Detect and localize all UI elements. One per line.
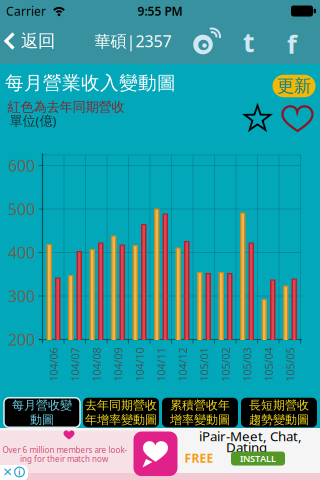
staticText: ing for their match now [20,454,108,464]
staticText: 增率變動圖 [170,412,230,427]
staticText: ✕ [2,465,12,479]
staticText: 累積營收年 [170,398,230,412]
staticText: t [243,24,255,60]
staticText: 每月營收變 [12,398,72,412]
staticText: 長短期營收 [249,398,309,412]
staticText: 104/11 [144,357,178,372]
staticText: 105/03 [230,357,264,372]
staticText: 去年同期營收 [85,398,157,412]
staticText: 104/12 [166,357,200,372]
staticText: 年增率變動圖 [85,412,157,427]
staticText: 600 [8,155,35,176]
staticText: Carrier [6,3,46,19]
staticText: 趨勢變動圖 [249,412,309,427]
staticText: 9:55 PM [137,3,182,19]
staticText: Over 6 million members are look- [2,445,127,455]
staticText: 105/01 [187,357,221,372]
staticText: 500 [8,198,35,220]
staticText: 104/06 [37,357,71,372]
staticText: 105/04 [252,357,286,372]
staticText: 紅色為去年同期營收 [7,99,124,115]
staticText: 105/05 [273,357,307,372]
staticText: 104/08 [80,357,114,372]
staticText: 動圖 [30,412,54,427]
staticText: f [287,27,297,61]
staticText: 104/09 [101,357,135,372]
staticText: 400 [8,242,35,263]
staticText: INSTALL [240,452,276,465]
staticText: 104/07 [58,357,92,372]
staticText: FREE [184,450,213,466]
staticText: iPair-Meet, Chat, [199,427,302,445]
staticText: i [18,466,21,478]
staticText: Dating [226,438,267,456]
staticText: 104/10 [123,357,157,372]
staticText: 更新 [277,75,311,97]
staticText: 單位(億) [9,112,56,129]
staticText: 返回 [21,30,55,52]
staticText: 華碩|2357 [94,30,171,52]
staticText: 105/02 [209,357,243,372]
staticText: 300 [8,285,35,307]
staticText: 每月營業收入變動圖 [5,71,176,94]
staticText: 200 [8,329,35,350]
